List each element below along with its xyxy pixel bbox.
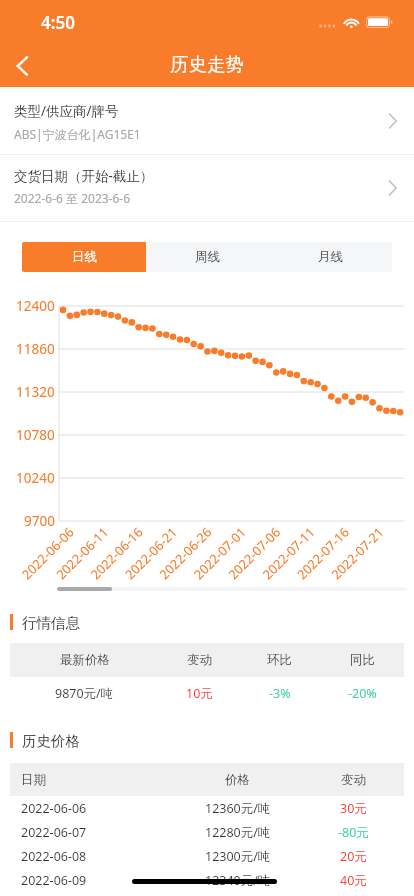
staticText: 4:50 [41, 11, 75, 34]
staticText: 行情信息 [22, 614, 80, 630]
staticText: 20元 [340, 848, 367, 865]
button[interactable]: 交货日期（开始-截止） [0, 155, 414, 221]
staticText: 变动 [341, 772, 366, 788]
staticText: 2022-06-07 [21, 824, 87, 841]
button[interactable]: 类型/供应商/牌号 [0, 87, 414, 154]
staticText: 日期 [21, 772, 46, 788]
staticText: 12340元/吨 [205, 872, 271, 889]
staticText: 交货日期（开始-截止） [14, 167, 154, 185]
button[interactable]: 日线 [22, 242, 146, 272]
staticText: 历史价格 [22, 732, 80, 748]
staticText: 月线 [318, 249, 343, 265]
staticText: 2022-06-08 [21, 848, 87, 865]
staticText: 变动 [187, 652, 212, 668]
button[interactable]: 2022-06-06 [10, 796, 404, 820]
staticText: -20% [348, 685, 377, 702]
staticText: 12300元/吨 [205, 848, 271, 865]
staticText: 2022-6-6 至 2023-6-6 [14, 190, 131, 206]
button[interactable]: 2022-06-09 [10, 868, 404, 892]
staticText: 价格 [225, 772, 250, 788]
staticText: 9870元/吨 [55, 685, 114, 702]
staticText: 日线 [72, 249, 97, 265]
button[interactable]: Back [0, 44, 48, 87]
staticText: 12360元/吨 [205, 800, 271, 817]
staticText: 同比 [350, 652, 375, 668]
button[interactable]: 月线 [269, 242, 392, 272]
staticText: 30元 [340, 800, 367, 817]
button[interactable]: 周线 [146, 242, 269, 272]
staticText: 类型/供应商/牌号 [14, 102, 119, 120]
staticText: ABS|宁波台化|AG15E1 [14, 126, 141, 142]
staticText: 2022-06-06 [21, 800, 87, 817]
staticText: 环比 [267, 652, 292, 668]
staticText: 2022-06-09 [21, 872, 87, 889]
staticText: 历史走势 [170, 53, 244, 76]
button[interactable]: 2022-06-07 [10, 820, 404, 844]
staticText: 周线 [195, 249, 220, 265]
staticText: -80元 [338, 824, 369, 841]
staticText: 10元 [186, 685, 213, 702]
button[interactable]: 2022-06-08 [10, 844, 404, 868]
staticText: 12280元/吨 [205, 824, 271, 841]
staticText: 最新价格 [60, 652, 110, 668]
staticText: -3% [269, 685, 291, 702]
staticText: 40元 [340, 872, 367, 889]
